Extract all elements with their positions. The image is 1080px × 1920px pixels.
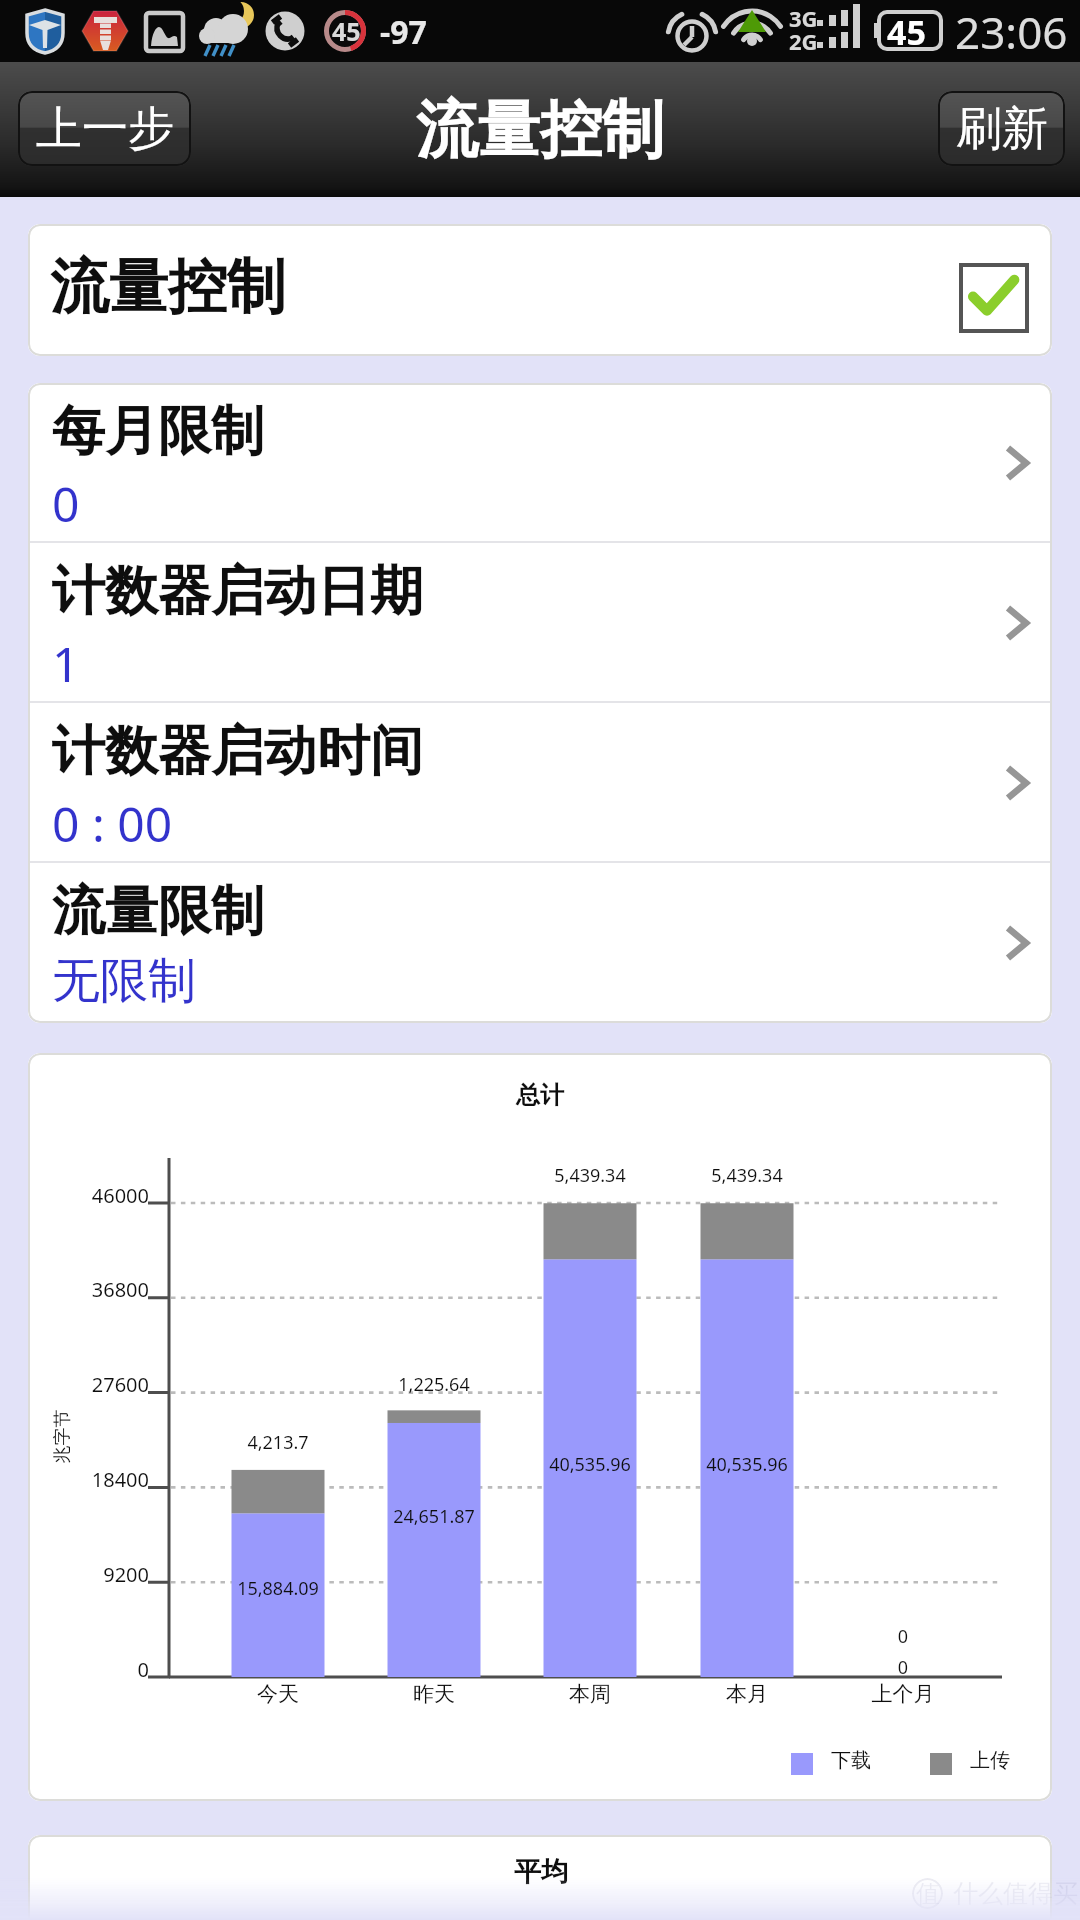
staticText: 什么值得买 — [953, 1878, 1078, 1909]
staticText: 刷新 — [956, 100, 1048, 158]
button[interactable]: 每月限制 — [28, 383, 1052, 543]
button[interactable]: 上一步 — [18, 91, 191, 166]
staticText: 上传 — [970, 1748, 1010, 1773]
staticText: 本月 — [597, 1681, 897, 1707]
staticText: 0 : 00 — [52, 791, 173, 856]
staticText: 流量控制 — [416, 91, 664, 169]
staticText: 46000 — [28, 1182, 149, 1209]
staticText: 本周 — [440, 1681, 740, 1707]
button[interactable]: 计数器启动日期 — [28, 543, 1052, 703]
staticText: 今天 — [128, 1681, 428, 1707]
staticText: 3G — [789, 3, 818, 33]
staticText: 45 — [332, 14, 361, 48]
staticText: 5,439.34 — [597, 1163, 897, 1188]
button[interactable]: 流量控制 — [28, 224, 1052, 356]
staticText: 24,651.87 — [284, 1504, 584, 1529]
staticText: 15,884.09 — [128, 1576, 428, 1601]
staticText: 昨天 — [284, 1681, 584, 1707]
staticText: 36800 — [28, 1276, 149, 1303]
staticText: 上个月 — [753, 1681, 1052, 1707]
staticText: 计数器启动日期 — [52, 558, 423, 625]
staticText: 总计 — [516, 1080, 564, 1110]
button[interactable]: Enable traffic control — [959, 263, 1029, 333]
staticText: 流量控制 — [50, 250, 286, 324]
staticText: 下载 — [831, 1748, 871, 1773]
staticText: 27600 — [28, 1371, 149, 1398]
staticText: 9200 — [28, 1561, 149, 1588]
staticText: 平均 — [514, 1855, 568, 1889]
staticText: 40,535.96 — [597, 1452, 897, 1477]
staticText: 每月限制 — [52, 398, 264, 465]
staticText: 5,439.34 — [440, 1163, 740, 1188]
staticText: 23:06 — [955, 2, 1068, 62]
staticText: 0 — [753, 1624, 1052, 1649]
button[interactable]: 计数器启动时间 — [28, 703, 1052, 863]
staticText: 无限制 — [52, 951, 196, 1011]
staticText: 18400 — [28, 1466, 149, 1493]
staticText: 兆字节 — [50, 1409, 73, 1463]
staticText: 40,535.96 — [440, 1452, 740, 1477]
staticText: 值 — [916, 1879, 940, 1909]
button[interactable]: 刷新 — [938, 91, 1065, 166]
staticText: 45 — [887, 9, 926, 55]
staticText: 4,213.7 — [128, 1430, 428, 1455]
staticText: 1,225.64 — [284, 1372, 584, 1397]
staticText: 0 — [753, 1655, 1052, 1680]
button[interactable]: 流量限制 — [28, 863, 1052, 1023]
staticText: 0 — [52, 471, 80, 536]
staticText: 计数器启动时间 — [52, 718, 423, 785]
staticText: 0 — [28, 1656, 149, 1683]
staticText: 上一步 — [36, 100, 174, 158]
staticText: 流量限制 — [52, 878, 264, 945]
staticText: 2G — [789, 26, 818, 56]
staticText: 1 — [52, 631, 80, 696]
staticText: -97 — [380, 10, 427, 54]
